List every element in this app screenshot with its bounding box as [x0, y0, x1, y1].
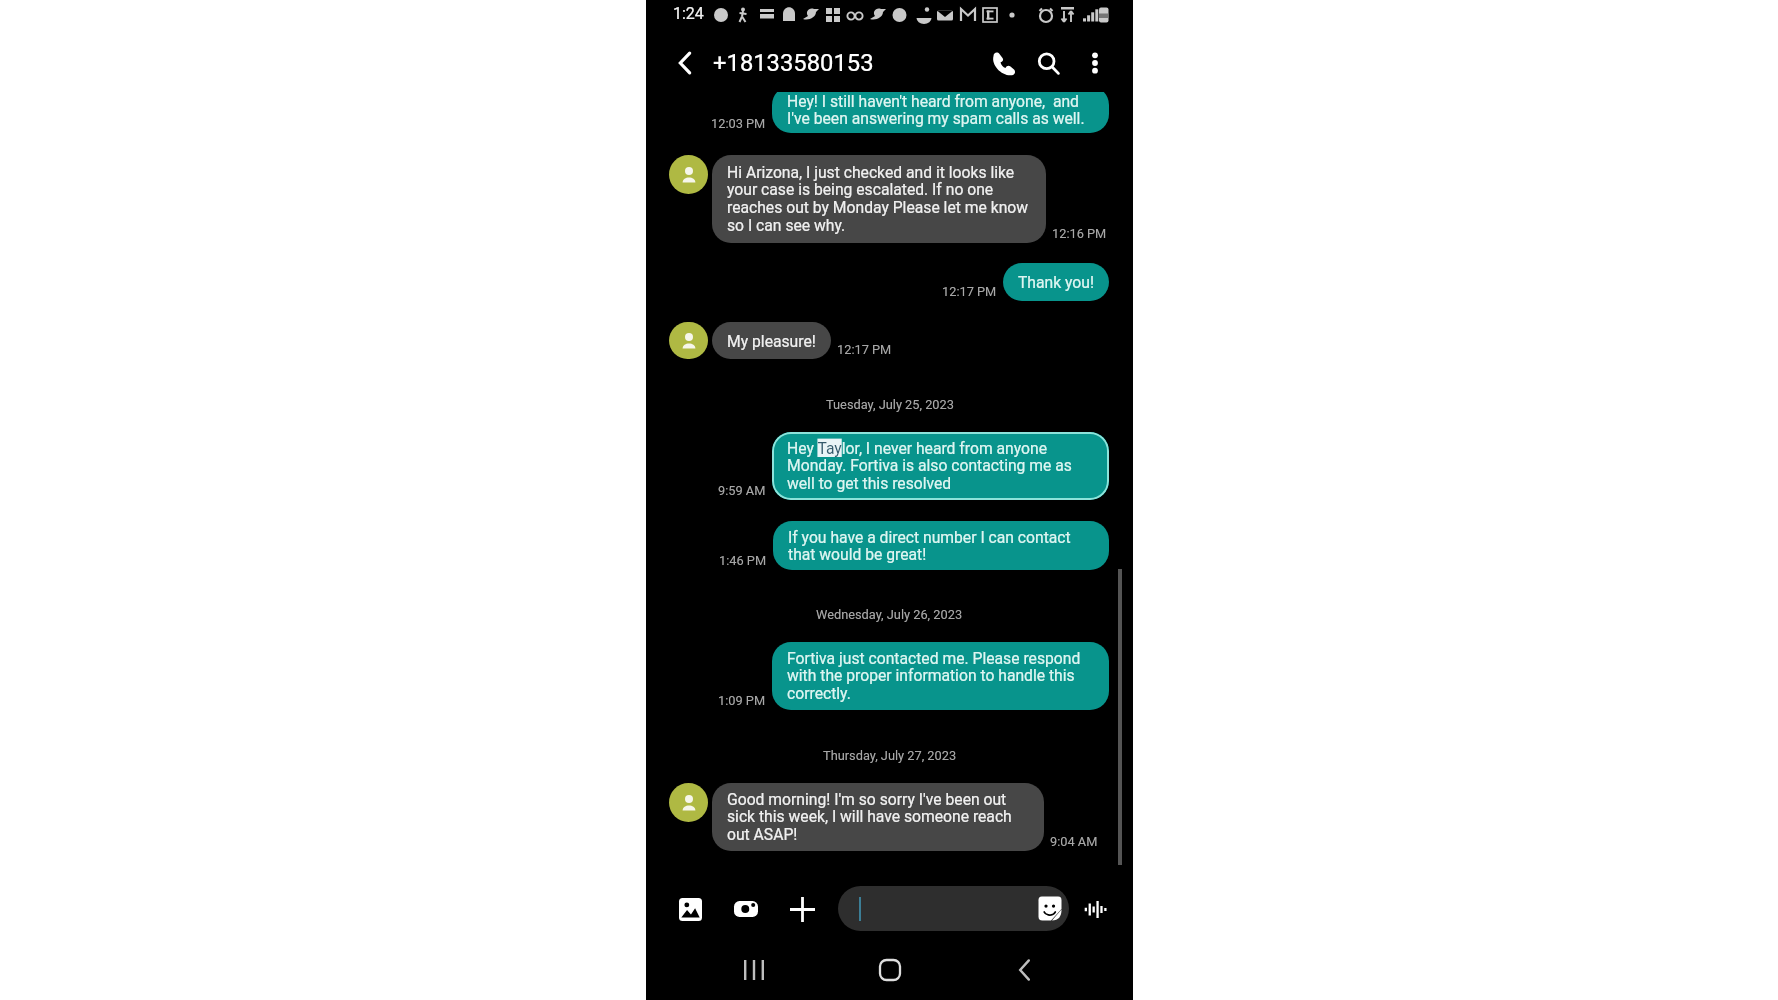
staticText: Hey Taylor, I never heard from anyone Mo… [787, 439, 1094, 493]
staticText: Thursday, July 27, 2023 [823, 748, 957, 763]
staticText: Fortiva just contacted me. Please respon… [787, 649, 1094, 703]
button[interactable]: Navigate up [665, 43, 705, 83]
staticText: 12:17 PM [942, 284, 997, 299]
staticText: 12:03 PM [711, 116, 766, 131]
staticText: My pleasure! [727, 332, 816, 350]
button[interactable]: Hey! I still haven't heard from anyone, … [772, 92, 1109, 133]
staticText: Hi Arizona, I just checked and it looks … [727, 163, 1031, 235]
staticText: 9:04 AM [1050, 834, 1098, 849]
staticText: Tuesday, July 25, 2023 [826, 397, 954, 412]
button[interactable]: Hi Arizona, I just checked and it looks … [712, 155, 1046, 243]
button[interactable]: Back [1005, 950, 1045, 990]
button[interactable]: Recent apps [734, 950, 774, 990]
staticText: 1:24 [673, 4, 704, 23]
staticText: 1:46 PM [719, 553, 767, 568]
button[interactable]: Call [983, 43, 1023, 83]
button[interactable]: More options [1075, 43, 1115, 83]
staticText: Wednesday, July 26, 2023 [816, 607, 963, 622]
button[interactable]: Home [870, 950, 910, 990]
button[interactable] [838, 886, 1069, 931]
button[interactable]: My pleasure! [712, 322, 831, 359]
staticText: Thank you! [1018, 273, 1094, 291]
staticText: 1:09 PM [718, 693, 766, 708]
button[interactable]: Hey Taylor, I never heard from anyone Mo… [772, 432, 1109, 500]
button[interactable]: Voice input [1075, 889, 1115, 929]
button[interactable]: More options [782, 889, 822, 929]
staticText: If you have a direct number I can contac… [788, 528, 1094, 564]
button[interactable]: Fortiva just contacted me. Please respon… [772, 642, 1109, 710]
button[interactable]: Camera [726, 889, 766, 929]
button[interactable]: If you have a direct number I can contac… [773, 521, 1109, 570]
staticText: 12:17 PM [837, 342, 892, 357]
button[interactable]: Search [1028, 43, 1068, 83]
staticText: 12:16 PM [1052, 226, 1107, 241]
staticText: 9:59 AM [718, 483, 766, 498]
staticText: Good morning! I'm so sorry I've been out… [727, 790, 1029, 844]
staticText: +18133580153 [713, 49, 874, 77]
staticText: Hey! I still haven't heard from anyone, … [787, 92, 1094, 128]
button[interactable]: Good morning! I'm so sorry I've been out… [712, 783, 1044, 851]
button[interactable]: Attach image [670, 889, 710, 929]
button[interactable]: Thank you! [1003, 263, 1109, 301]
